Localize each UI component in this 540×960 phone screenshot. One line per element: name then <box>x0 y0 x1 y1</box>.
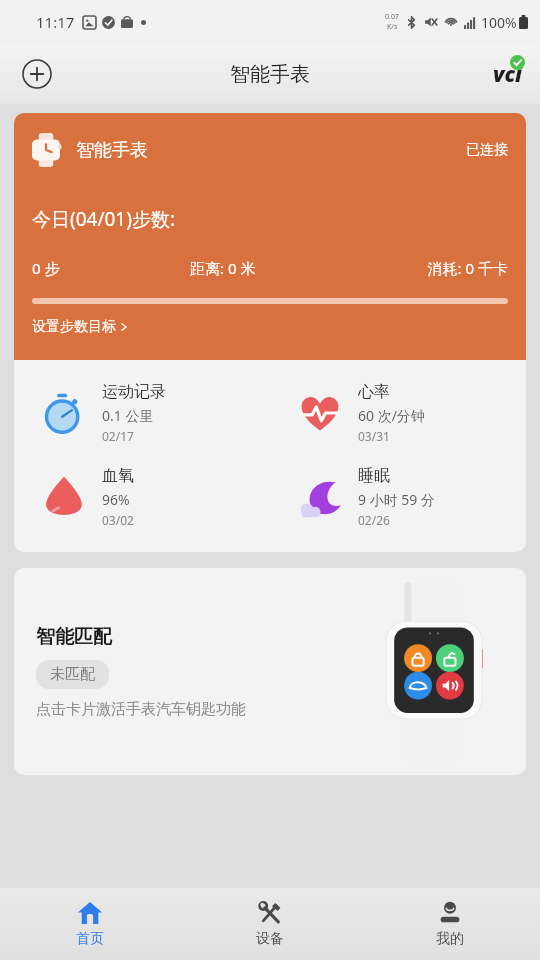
staticText: 03/02 <box>102 512 134 528</box>
staticText: 100% <box>481 13 517 32</box>
button[interactable]: Add device <box>18 55 56 93</box>
staticText: 我的 <box>436 930 464 948</box>
staticText: 今日(04/01)步数: <box>32 206 176 232</box>
button[interactable]: 我的 <box>360 892 540 956</box>
staticText: 11:17 <box>36 12 75 32</box>
button[interactable]: 智能手表 <box>14 113 526 360</box>
button[interactable]: 首页 <box>0 892 180 956</box>
button[interactable]: 设备 <box>180 892 360 956</box>
staticText: 02/26 <box>358 512 390 528</box>
staticText: 0 步 <box>32 258 190 278</box>
staticText: 60 次/分钟 <box>358 406 425 425</box>
staticText: 血氧 <box>102 466 134 486</box>
staticText: K/s <box>387 22 398 32</box>
button[interactable]: 智能匹配 <box>14 568 526 775</box>
staticText: 设置步数目标 <box>32 318 116 336</box>
staticText: 智能匹配 <box>36 625 112 649</box>
staticText: 睡眠 <box>358 466 390 486</box>
button[interactable]: 运动记录 <box>14 382 270 444</box>
staticText: 设备 <box>256 930 284 948</box>
button[interactable]: 睡眠 <box>270 466 526 528</box>
staticText: 距离: 0 米 <box>190 258 349 278</box>
staticText: 点击卡片激活手表汽车钥匙功能 <box>36 700 246 719</box>
staticText: 智能手表 <box>230 62 310 87</box>
staticText: 03/31 <box>358 428 390 444</box>
staticText: 9 小时 59 分 <box>358 490 435 509</box>
staticText: 运动记录 <box>102 382 166 402</box>
staticText: 未匹配 <box>50 665 95 684</box>
button[interactable]: 心率 <box>270 382 526 444</box>
staticText: 已连接 <box>466 141 508 159</box>
staticText: 02/17 <box>102 428 134 444</box>
staticText: 心率 <box>358 382 390 402</box>
staticText: 0.1 公里 <box>102 406 154 425</box>
button[interactable]: VCI verified <box>489 56 526 93</box>
staticText: 0.07 <box>385 12 399 22</box>
staticText: 智能手表 <box>76 139 148 162</box>
staticText: vci <box>493 60 522 89</box>
staticText: 首页 <box>76 930 104 948</box>
staticText: 96% <box>102 490 130 509</box>
button[interactable]: 血氧 <box>14 466 270 528</box>
button[interactable]: 设置步数目标 <box>32 318 129 336</box>
staticText: 消耗: 0 千卡 <box>349 258 508 278</box>
